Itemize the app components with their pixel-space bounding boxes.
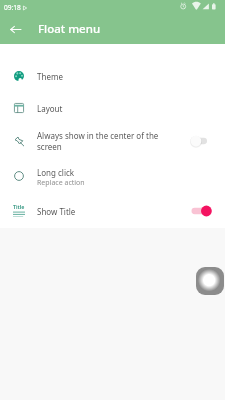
staticText: Float menu: [38, 21, 101, 37]
button[interactable]: Floating menu button: [196, 267, 224, 295]
staticText: 09:18: [4, 3, 21, 12]
staticText: Show Title: [37, 206, 76, 217]
button[interactable]: Always show in the center of the screen: [0, 124, 225, 158]
staticText: Long click: [37, 167, 75, 178]
button[interactable]: Long click: [0, 158, 225, 193]
staticText: Replace action: [37, 178, 85, 188]
button[interactable]: Layout: [0, 92, 225, 124]
staticText: Title: [13, 203, 25, 210]
staticText: Theme: [37, 71, 63, 82]
staticText: Always show in the center of the screen: [37, 130, 167, 152]
button[interactable]: Title: [0, 193, 225, 229]
button[interactable]: Theme: [0, 60, 225, 92]
button[interactable]: Back: [5, 19, 25, 39]
staticText: Layout: [37, 103, 63, 114]
button[interactable]: Toggle on: [191, 204, 213, 218]
button[interactable]: Toggle off: [191, 134, 213, 148]
